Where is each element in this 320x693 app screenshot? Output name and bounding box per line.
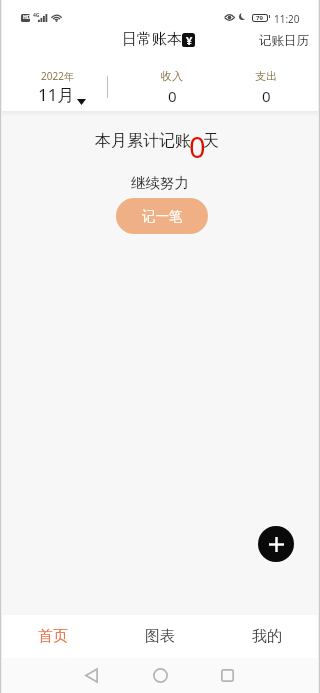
button[interactable]: 记账日历 (259, 33, 309, 49)
staticText: HD (23, 14, 31, 21)
staticText: 我的 (252, 627, 282, 646)
staticText: 2022年 (41, 69, 74, 83)
staticText: 11月 (38, 83, 75, 106)
staticText: 收入 (161, 69, 183, 83)
staticText: 0 (262, 86, 271, 106)
staticText: 支出 (255, 69, 277, 83)
staticText: 记一笔 (142, 208, 183, 225)
staticText: ¥ (186, 33, 193, 48)
staticText: 79 (256, 14, 263, 22)
staticText: 0 (189, 127, 206, 166)
button[interactable]: 图表 (106, 615, 213, 658)
button[interactable]: 我的 (213, 615, 320, 658)
staticText: 0 (168, 86, 177, 106)
button[interactable]: Home (145, 660, 175, 690)
button[interactable]: 首页 (0, 615, 106, 658)
staticText: 日常账本 (122, 30, 182, 49)
button[interactable]: Back (76, 660, 106, 690)
button[interactable]: 记一笔 (116, 198, 208, 234)
staticText: 图表 (145, 627, 175, 646)
button[interactable]: 日常账本 (122, 30, 195, 49)
staticText: 4G (33, 12, 40, 19)
staticText: 11:20 (274, 12, 300, 26)
button[interactable]: Add record (258, 526, 294, 562)
staticText: 本月累计记账 (95, 131, 191, 151)
button[interactable]: Recents (212, 660, 242, 690)
staticText: 记账日历 (259, 33, 309, 49)
staticText: 天 (203, 131, 219, 151)
staticText: 继续努力 (131, 174, 189, 192)
staticText: 首页 (38, 627, 68, 646)
